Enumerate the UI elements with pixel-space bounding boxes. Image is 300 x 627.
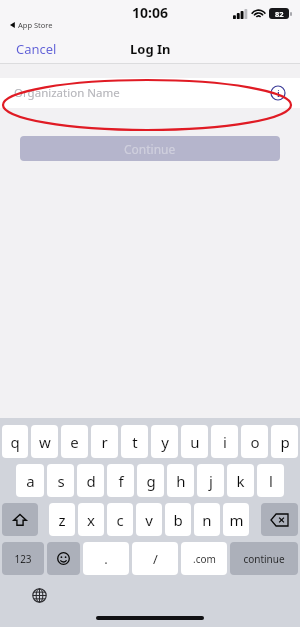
staticText: z bbox=[58, 510, 66, 530]
button[interactable]: 123 bbox=[2, 542, 44, 575]
staticText: w bbox=[39, 432, 51, 452]
button[interactable]: a bbox=[16, 464, 44, 497]
button[interactable]: Continue bbox=[20, 136, 280, 161]
staticText: .com bbox=[193, 552, 216, 566]
staticText: v bbox=[145, 510, 153, 530]
staticText: / bbox=[153, 550, 158, 568]
button[interactable]: g bbox=[137, 464, 164, 497]
staticText: r bbox=[101, 432, 108, 452]
staticText: a bbox=[26, 471, 35, 491]
staticText: . bbox=[104, 550, 108, 568]
staticText: j bbox=[209, 471, 213, 491]
button[interactable]: .com bbox=[181, 542, 227, 575]
staticText: e bbox=[70, 432, 79, 452]
staticText: u bbox=[190, 432, 200, 452]
button[interactable]: l bbox=[257, 464, 284, 497]
staticText: continue bbox=[243, 552, 285, 566]
button[interactable]: continue bbox=[230, 542, 298, 575]
button[interactable]: b bbox=[165, 503, 191, 536]
button[interactable]: m bbox=[223, 503, 249, 536]
button[interactable]: e bbox=[61, 425, 88, 458]
staticText: m bbox=[229, 510, 244, 530]
staticText: l bbox=[269, 471, 273, 491]
button[interactable]: x bbox=[78, 503, 104, 536]
button[interactable]: u bbox=[181, 425, 208, 458]
button[interactable]: Organization Name bbox=[0, 78, 300, 108]
button[interactable]: n bbox=[194, 503, 220, 536]
button[interactable]: Backspace bbox=[261, 503, 298, 536]
button[interactable]: v bbox=[136, 503, 162, 536]
staticText: p bbox=[280, 432, 290, 452]
staticText: c bbox=[116, 510, 124, 530]
staticText: Organization Name bbox=[14, 85, 120, 101]
staticText: Continue bbox=[124, 141, 176, 157]
staticText: i bbox=[277, 87, 280, 99]
button[interactable]: Emoji bbox=[47, 542, 80, 575]
staticText: t bbox=[132, 432, 138, 452]
button[interactable]: c bbox=[107, 503, 133, 536]
button[interactable]: t bbox=[121, 425, 148, 458]
staticText: b bbox=[173, 510, 183, 530]
button[interactable]: s bbox=[47, 464, 74, 497]
button[interactable]: r bbox=[91, 425, 118, 458]
staticText: s bbox=[57, 471, 65, 491]
button[interactable]: o bbox=[241, 425, 268, 458]
button[interactable]: i bbox=[211, 425, 238, 458]
staticText: d bbox=[86, 471, 96, 491]
button[interactable]: h bbox=[167, 464, 194, 497]
staticText: i bbox=[223, 432, 227, 452]
staticText: f bbox=[118, 471, 124, 491]
staticText: Cancel bbox=[16, 40, 57, 58]
button[interactable]: y bbox=[151, 425, 178, 458]
staticText: h bbox=[176, 471, 186, 491]
button[interactable]: k bbox=[227, 464, 254, 497]
button[interactable]: d bbox=[77, 464, 104, 497]
button[interactable]: f bbox=[107, 464, 134, 497]
button[interactable]: Change keyboard language bbox=[29, 585, 49, 605]
staticText: x bbox=[87, 510, 95, 530]
staticText: n bbox=[202, 510, 212, 530]
staticText: g bbox=[146, 471, 156, 491]
button[interactable]: j bbox=[197, 464, 224, 497]
button[interactable]: z bbox=[49, 503, 75, 536]
button[interactable]: / bbox=[132, 542, 178, 575]
staticText: Log In bbox=[130, 40, 171, 58]
button[interactable]: w bbox=[31, 425, 58, 458]
button[interactable]: . bbox=[83, 542, 129, 575]
staticText: 82 bbox=[275, 9, 284, 19]
button[interactable]: p bbox=[271, 425, 298, 458]
staticText: 123 bbox=[14, 552, 32, 566]
staticText: q bbox=[10, 432, 20, 452]
staticText: o bbox=[250, 432, 260, 452]
button[interactable]: Information bbox=[270, 85, 286, 101]
button[interactable]: Shift bbox=[2, 503, 38, 536]
button[interactable]: Cancel bbox=[12, 36, 61, 62]
staticText: App Store bbox=[18, 20, 53, 30]
button[interactable]: q bbox=[2, 425, 28, 458]
staticText: y bbox=[161, 432, 169, 452]
staticText: k bbox=[236, 471, 245, 491]
staticText: 10:06 bbox=[132, 3, 168, 22]
